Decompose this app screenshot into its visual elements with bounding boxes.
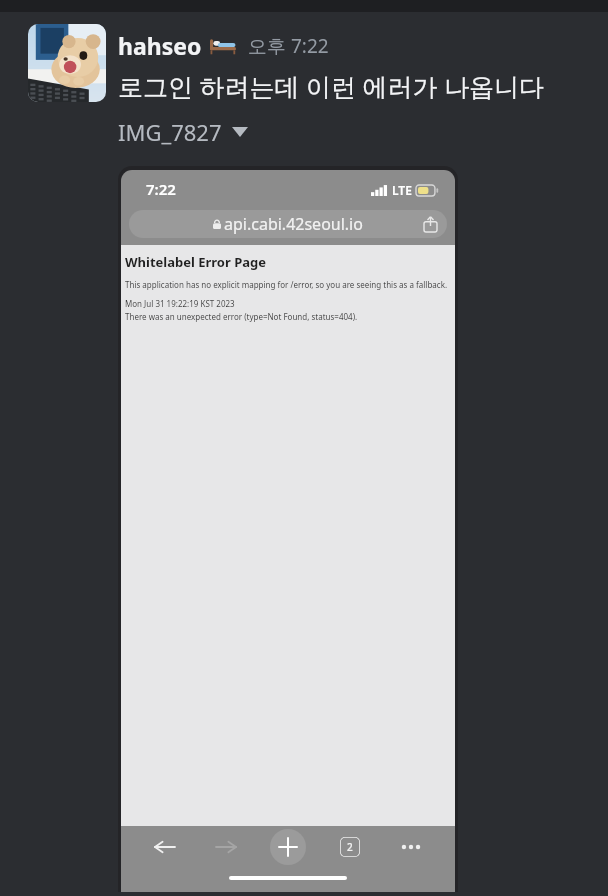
button[interactable]: More — [393, 829, 429, 865]
other: Collapse attachment — [232, 127, 248, 137]
button[interactable]: api.cabi.42seoul.io — [129, 210, 447, 238]
button[interactable]: Add bookmark — [270, 829, 306, 865]
button[interactable]: IMG_7827 — [118, 117, 248, 147]
staticText: LTE — [392, 182, 412, 198]
staticText: 로그인 하려는데 이런 에러가 나옵니다 — [118, 69, 545, 103]
staticText: 7:22 — [146, 179, 176, 199]
button[interactable]: Back — [147, 829, 183, 865]
other: Share — [424, 216, 437, 232]
button[interactable]: Forward — [208, 829, 244, 865]
staticText: IMG_7827 — [118, 117, 222, 147]
staticText: Mon Jul 31 19:22:19 KST 2023 — [125, 298, 235, 309]
staticText: This application has no explicit mapping… — [125, 279, 448, 290]
staticText: 2 — [347, 840, 353, 854]
button[interactable]: Profile picture — [28, 24, 106, 102]
button[interactable]: 7:22 — [118, 166, 458, 892]
staticText: There was an unexpected error (type=Not … — [125, 311, 358, 322]
staticText: api.cabi.42seoul.io — [224, 213, 363, 235]
button[interactable]: Tabs — [332, 829, 368, 865]
button[interactable]: hahseo — [118, 30, 202, 61]
staticText: Whitelabel Error Page — [125, 253, 266, 271]
staticText: 오후 7:22 — [248, 33, 329, 59]
